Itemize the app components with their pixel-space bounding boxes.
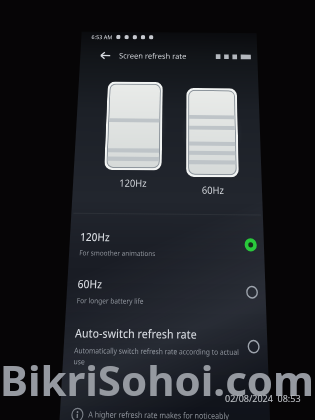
staticText: For longer battery life (76, 295, 144, 306)
button[interactable]: Back (96, 46, 114, 64)
button[interactable]: 120Hz (68, 220, 265, 268)
button[interactable]: Auto-switch refresh rate (62, 315, 268, 377)
button[interactable]: 60Hz (66, 266, 266, 317)
staticText: Auto-switch refresh rate (75, 324, 197, 342)
staticText: BikriSohoi.com (0, 351, 315, 408)
staticText: 02/08/2024 08:53 (225, 392, 301, 404)
staticText: For smoother animations (79, 247, 155, 258)
staticText: A higher refresh rate makes for noticeab… (87, 408, 259, 420)
staticText: 120Hz (119, 176, 147, 190)
staticText: 60Hz (202, 183, 225, 197)
staticText: 6:53 AM (91, 34, 113, 41)
staticText: Automatically switch refresh rate accord… (73, 345, 242, 367)
staticText: 120Hz (80, 229, 111, 244)
staticText: 60Hz (77, 276, 103, 292)
staticText: Screen refresh rate (119, 50, 187, 61)
